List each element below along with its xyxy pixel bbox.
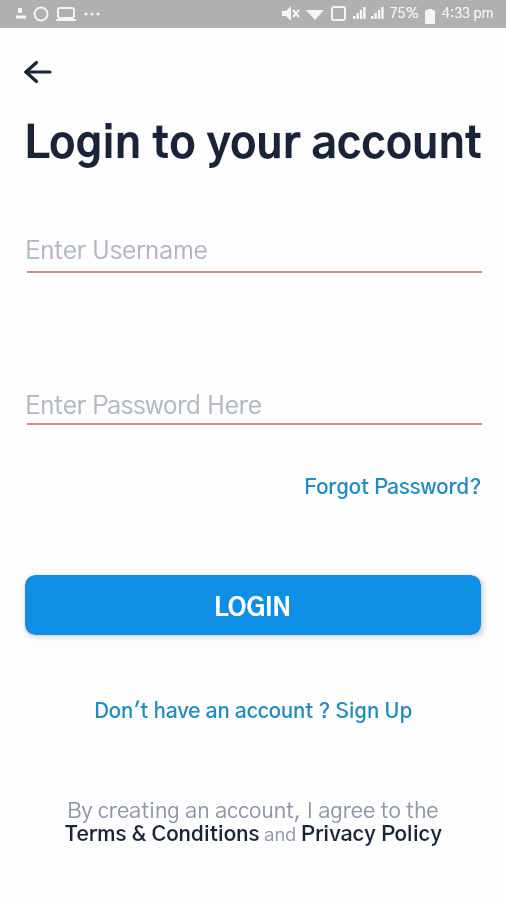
staticText: LOGIN (214, 596, 292, 621)
staticText: Login to your account (24, 123, 482, 167)
staticText: Enter Password Here (25, 394, 262, 419)
staticText: Enter Username (25, 239, 208, 264)
button[interactable]: LOGIN (25, 575, 481, 635)
staticText: Terms & Conditions and Privacy Policy (65, 824, 442, 845)
button[interactable] (14, 58, 58, 88)
staticText: Don't have an account ? Sign Up (94, 701, 413, 722)
staticText: By creating an account, I agree to the (67, 800, 439, 822)
staticText: 4:33 pm (442, 7, 494, 21)
button[interactable]: Don't have an account ? Sign Up (0, 701, 506, 722)
button[interactable]: Forgot Password? (304, 477, 482, 498)
staticText: 75% (390, 7, 420, 21)
